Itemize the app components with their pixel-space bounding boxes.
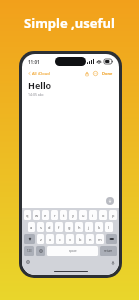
staticText: t xyxy=(63,213,65,218)
staticText: d xyxy=(48,225,51,230)
button[interactable]: All iCloud xyxy=(27,71,51,76)
button[interactable]: space xyxy=(47,246,98,256)
staticText: w xyxy=(35,213,39,218)
button[interactable]: x xyxy=(46,234,54,244)
button[interactable]: p xyxy=(109,210,117,220)
staticText: f xyxy=(58,225,60,230)
button[interactable]: l xyxy=(105,222,113,232)
staticText: j xyxy=(88,225,90,230)
button[interactable]: Backspace xyxy=(106,234,117,244)
button[interactable]: k xyxy=(95,222,103,232)
staticText: q xyxy=(26,213,29,218)
button[interactable]: Emoji xyxy=(36,246,45,256)
button[interactable]: c xyxy=(56,234,64,244)
button[interactable]: f xyxy=(55,222,63,232)
staticText: o xyxy=(102,213,105,218)
button[interactable]: m xyxy=(96,234,104,244)
button[interactable]: Done xyxy=(101,71,114,76)
staticText: y xyxy=(72,213,75,218)
staticText: h xyxy=(78,225,81,230)
staticText: g xyxy=(68,225,71,230)
button[interactable]: u xyxy=(79,210,87,220)
staticText: Done xyxy=(102,71,113,76)
staticText: k xyxy=(98,225,101,230)
button[interactable]: s xyxy=(37,222,44,232)
button[interactable]: Dictate xyxy=(110,260,115,265)
button[interactable]: t xyxy=(60,210,67,220)
button[interactable]: j xyxy=(85,222,93,232)
staticText: c xyxy=(59,237,61,242)
staticText: i xyxy=(92,213,94,218)
button[interactable]: q xyxy=(24,210,31,220)
button[interactable]: Hide keyboard xyxy=(106,197,114,205)
button[interactable]: g xyxy=(65,222,73,232)
staticText: Hello xyxy=(28,79,52,91)
staticText: v xyxy=(69,237,72,242)
button[interactable]: z xyxy=(37,234,44,244)
button[interactable]: w xyxy=(33,210,40,220)
staticText: 14:05 abc xyxy=(28,92,44,97)
button[interactable]: a xyxy=(28,222,35,232)
button[interactable]: d xyxy=(46,222,53,232)
button[interactable]: return xyxy=(100,246,117,256)
staticText: z xyxy=(40,237,42,242)
button[interactable]: o xyxy=(99,210,107,220)
button[interactable]: Shift xyxy=(24,234,35,244)
staticText: Simple ,useful xyxy=(0,14,139,32)
staticText: a xyxy=(30,225,33,230)
staticText: return xyxy=(104,249,113,253)
button[interactable]: v xyxy=(66,234,74,244)
button[interactable]: b xyxy=(76,234,84,244)
button[interactable]: Share xyxy=(83,70,90,77)
staticText: space xyxy=(69,249,77,253)
staticText: e xyxy=(44,213,47,218)
button[interactable]: h xyxy=(75,222,83,232)
staticText: 123 xyxy=(27,249,32,253)
button[interactable]: Change keyboard xyxy=(26,260,31,265)
button[interactable]: n xyxy=(86,234,94,244)
staticText: n xyxy=(89,237,92,242)
button[interactable]: e xyxy=(42,210,49,220)
staticText: u xyxy=(82,213,85,218)
button[interactable]: r xyxy=(51,210,58,220)
staticText: l xyxy=(108,225,110,230)
staticText: b xyxy=(79,237,82,242)
button[interactable]: i xyxy=(89,210,97,220)
button[interactable]: 123 xyxy=(24,246,34,256)
staticText: r xyxy=(54,213,56,218)
staticText: All iCloud xyxy=(32,71,50,76)
staticText: x xyxy=(49,237,52,242)
button[interactable]: More options xyxy=(92,70,99,77)
staticText: p xyxy=(112,213,115,218)
staticText: 11:01 xyxy=(28,59,40,65)
staticText: s xyxy=(40,225,42,230)
button[interactable]: y xyxy=(69,210,77,220)
staticText: m xyxy=(98,237,102,242)
